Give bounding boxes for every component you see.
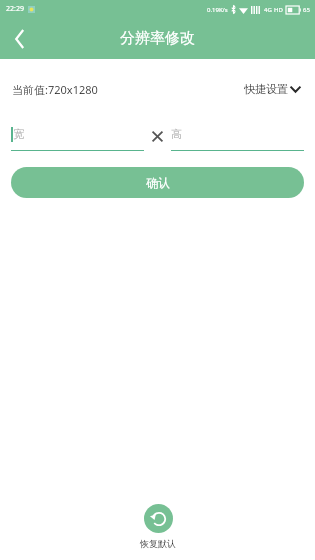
other: Restore default xyxy=(144,504,173,533)
staticText: 恢复默认 xyxy=(140,538,176,549)
button[interactable]: Restore default xyxy=(118,504,198,549)
staticText: 65 xyxy=(303,6,310,14)
button[interactable]: 快捷设置 xyxy=(242,80,303,98)
staticText: 4G xyxy=(264,6,272,14)
button[interactable]: 宽 xyxy=(11,121,144,151)
staticText: 当前值:720x1280 xyxy=(12,82,98,97)
button[interactable]: 确认 xyxy=(11,167,304,198)
staticText: 高 xyxy=(171,127,182,141)
staticText: 22:29 xyxy=(6,4,24,14)
staticText: HD xyxy=(274,6,283,14)
staticText: 快捷设置 xyxy=(244,82,288,96)
button[interactable]: Back xyxy=(0,19,40,59)
staticText: 确认 xyxy=(146,175,170,190)
staticText: 0.19K/s xyxy=(207,6,228,14)
staticText: 宽 xyxy=(13,127,24,141)
staticText: 分辨率修改 xyxy=(120,29,195,48)
button[interactable]: 高 xyxy=(171,121,304,151)
